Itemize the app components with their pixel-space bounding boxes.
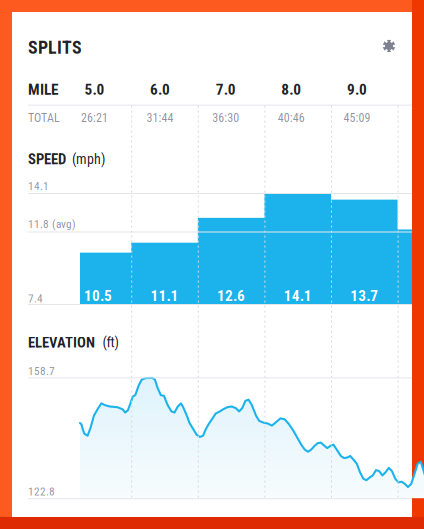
staticText: (mph) bbox=[72, 151, 105, 167]
staticText: TOTAL bbox=[28, 111, 60, 125]
staticText: MILE bbox=[28, 81, 59, 99]
staticText: 13.7 bbox=[350, 287, 378, 305]
staticText: 122.8 bbox=[28, 485, 55, 498]
staticText: ELEVATION bbox=[28, 334, 95, 351]
staticText: 12.6 bbox=[217, 287, 245, 305]
staticText: 8.0 bbox=[281, 81, 301, 99]
staticText: SPLITS bbox=[28, 37, 82, 58]
staticText: 6.0 bbox=[150, 81, 170, 99]
staticText: SPEED bbox=[28, 151, 66, 168]
staticText: 40:46 bbox=[278, 111, 305, 125]
staticText: 31:44 bbox=[147, 111, 174, 125]
staticText: 14.1 bbox=[284, 287, 312, 305]
staticText: 11.1 bbox=[150, 287, 178, 305]
staticText: 7.0 bbox=[216, 81, 236, 99]
staticText: 11.8 (avg) bbox=[28, 217, 76, 231]
staticText: 36:30 bbox=[212, 111, 239, 125]
staticText: 10.5 bbox=[84, 287, 112, 305]
staticText: 7.4 bbox=[28, 292, 43, 305]
staticText: 5.0 bbox=[84, 81, 104, 99]
staticText: 14.1 bbox=[28, 179, 49, 193]
button[interactable]: Settings bbox=[376, 33, 402, 59]
staticText: 158.7 bbox=[28, 364, 55, 378]
staticText: 9.0 bbox=[347, 81, 367, 99]
staticText: 26:21 bbox=[81, 111, 108, 125]
staticText: (ft) bbox=[102, 334, 118, 351]
staticText: 45:09 bbox=[343, 111, 370, 125]
